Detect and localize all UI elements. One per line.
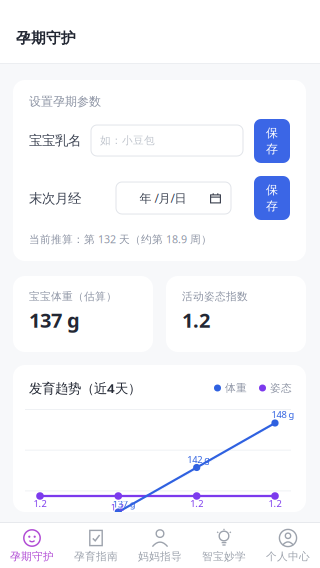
- staticText: 孕期守护: [16, 29, 76, 47]
- button[interactable]: 智宝妙学: [192, 523, 256, 568]
- staticText: 智宝妙学: [202, 550, 246, 563]
- staticText: 当前推算：第 132 天（约第 18.9 周）: [29, 232, 212, 246]
- staticText: 1.2: [268, 497, 281, 510]
- staticText: 保: [266, 183, 278, 197]
- staticText: 存: [266, 199, 278, 213]
- staticText: 142 g: [187, 453, 210, 466]
- staticText: 个人中心: [266, 550, 310, 563]
- staticText: 孕期守护: [10, 550, 54, 563]
- staticText: 发育趋势（近4天）: [29, 379, 141, 397]
- button[interactable]: 保: [254, 119, 290, 163]
- staticText: 年 /月/日: [139, 190, 186, 206]
- staticText: 如：小豆包: [100, 134, 155, 147]
- staticText: 宝宝体重（估算）: [29, 290, 117, 303]
- button[interactable]: 妈妈指导: [128, 523, 192, 568]
- staticText: 1.2: [190, 497, 203, 510]
- staticText: 体重: [225, 381, 247, 394]
- staticText: 宝宝乳名: [29, 132, 81, 149]
- staticText: 148 g: [271, 408, 294, 421]
- staticText: 活动姿态指数: [182, 290, 248, 303]
- staticText: 末次月经: [29, 190, 81, 207]
- button[interactable]: 个人中心: [256, 523, 320, 568]
- staticText: 保: [266, 126, 278, 140]
- staticText: 137 g: [29, 307, 80, 333]
- staticText: 姿态: [270, 381, 292, 394]
- staticText: 1.2: [182, 307, 210, 333]
- staticText: 1.2: [33, 497, 46, 510]
- staticText: 妈妈指导: [138, 550, 182, 563]
- button[interactable]: 孕期守护: [0, 523, 64, 568]
- staticText: 137 g: [113, 498, 136, 510]
- staticText: 存: [266, 142, 278, 156]
- staticText: 1.2: [111, 501, 124, 513]
- staticText: 孕育指南: [74, 550, 118, 563]
- button[interactable]: 孕育指南: [64, 523, 128, 568]
- button[interactable]: 保: [254, 176, 290, 220]
- staticText: 设置孕期参数: [29, 94, 101, 109]
